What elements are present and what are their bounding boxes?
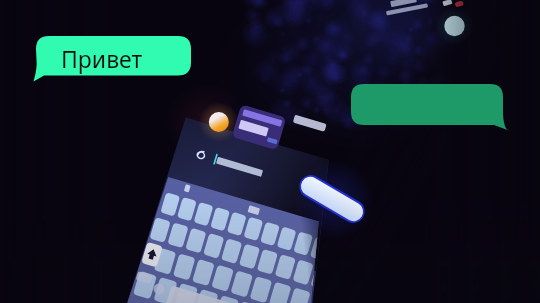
button[interactable] bbox=[351, 84, 509, 130]
button[interactable]: Привет bbox=[35, 36, 191, 82]
staticText: Привет bbox=[61, 43, 143, 74]
